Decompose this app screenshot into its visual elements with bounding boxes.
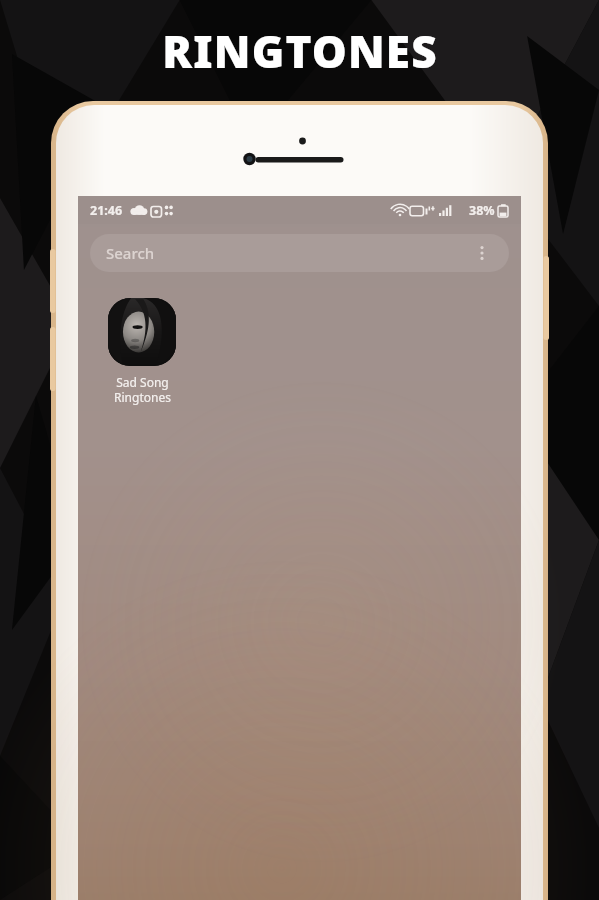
staticText: Sad Song Ringtones xyxy=(114,374,171,405)
staticText: 38% xyxy=(469,202,495,219)
button[interactable]: Sad Song Ringtones xyxy=(94,294,190,409)
button[interactable]: Search xyxy=(90,234,509,272)
staticText: RINGTONES xyxy=(162,21,438,81)
staticText: Search xyxy=(106,243,155,263)
button[interactable]: More options xyxy=(471,242,493,264)
staticText: 21:46 xyxy=(90,202,123,219)
